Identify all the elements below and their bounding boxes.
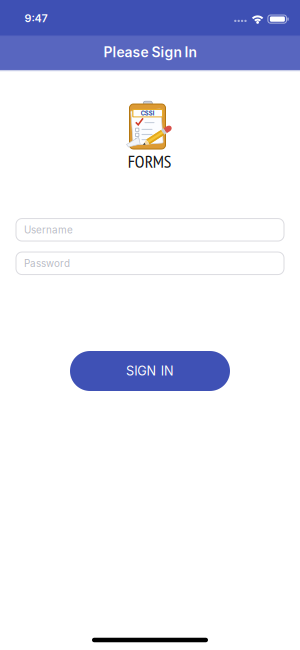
staticText: SIGN IN <box>126 363 174 379</box>
staticText: Please Sign In <box>103 44 196 61</box>
button[interactable]: SIGN IN <box>70 351 230 391</box>
staticText: CSSI <box>141 110 155 117</box>
staticText: Password <box>24 257 70 269</box>
staticText: Username <box>24 224 73 236</box>
staticText: 9:47 <box>24 12 47 25</box>
staticText: FORMS <box>128 150 172 173</box>
button[interactable]: Password <box>16 252 284 275</box>
button[interactable]: Username <box>16 219 284 241</box>
